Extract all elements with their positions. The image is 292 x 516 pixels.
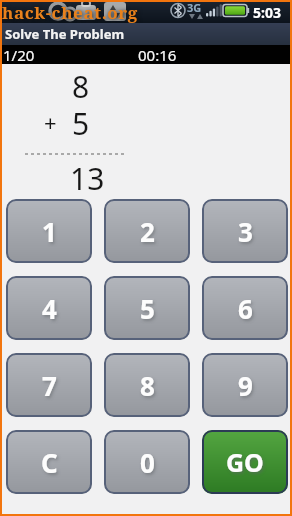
button[interactable]: 1 [6,199,92,263]
button[interactable]: C [6,430,92,494]
staticText: 7 [42,368,57,403]
button[interactable]: 8 [104,353,190,417]
staticText: 13 [70,158,105,198]
staticText: 00:16 [138,45,177,64]
staticText: + [44,107,57,137]
staticText: GO [226,445,264,479]
staticText: hack-cheat.org [2,1,138,24]
button[interactable]: 4 [6,276,92,340]
staticText: 1 [42,214,57,249]
staticText: 3 [238,214,253,249]
staticText: 6 [238,291,253,326]
staticText: 5 [72,103,90,143]
staticText: 8 [72,66,90,106]
staticText: 5 [140,291,155,326]
staticText: 8 [140,368,155,403]
staticText: C [41,445,58,480]
staticText: 0 [140,445,155,480]
button[interactable]: 7 [6,353,92,417]
staticText: 1/20 [3,45,35,64]
staticText: 2 [140,214,155,249]
staticText: 3G [187,0,202,15]
button[interactable]: 9 [202,353,288,417]
button[interactable]: GO [202,430,288,494]
staticText: 9 [238,368,253,403]
staticText: Solve The Problem [5,25,125,43]
button[interactable]: 5 [104,276,190,340]
button[interactable]: 3 [202,199,288,263]
staticText: 5:03 [253,3,281,22]
staticText: 4 [42,291,57,326]
button[interactable]: 0 [104,430,190,494]
button[interactable]: 2 [104,199,190,263]
button[interactable]: 6 [202,276,288,340]
